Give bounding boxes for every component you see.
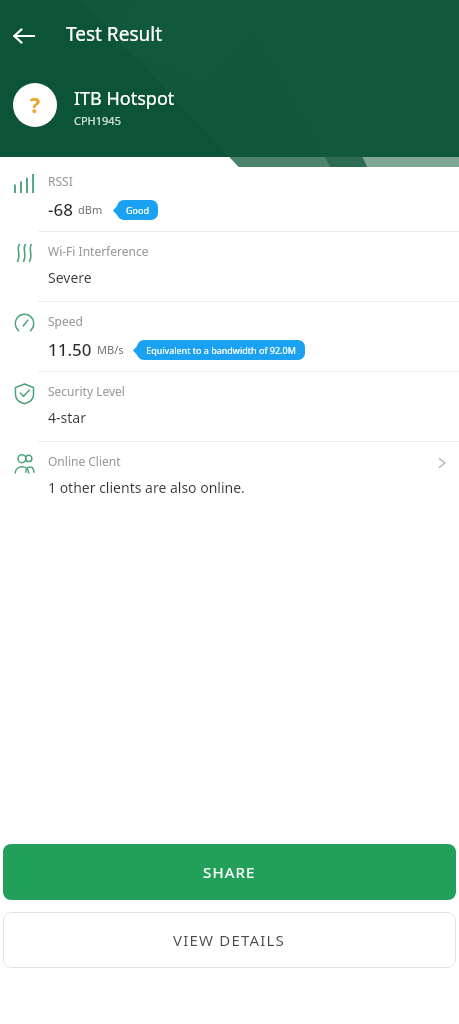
staticText: Test Result [66, 21, 162, 47]
staticText: Speed [48, 313, 83, 329]
staticText: ? [30, 91, 41, 120]
button[interactable]: SHARE [3, 844, 456, 900]
button[interactable]: VIEW DETAILS [3, 912, 456, 968]
staticText: Good [126, 204, 149, 216]
staticText: CPH1945 [74, 113, 121, 128]
staticText: -68 [48, 198, 73, 221]
staticText: Severe [48, 268, 92, 287]
staticText: SHARE [203, 862, 256, 882]
staticText: 1 other clients are also online. [48, 478, 245, 497]
staticText: ITB Hotspot [74, 86, 175, 111]
staticText: 11.50 [48, 338, 92, 361]
button[interactable]: Online Client [0, 442, 459, 511]
staticText: Equivalent to a bandwidth of 92.0M [146, 344, 296, 356]
staticText: Security Level [48, 383, 125, 399]
button[interactable]: Back [0, 12, 48, 60]
staticText: dBm [78, 202, 103, 217]
staticText: 4-star [48, 408, 86, 427]
staticText: Wi-Fi Interference [48, 243, 149, 259]
staticText: VIEW DETAILS [173, 930, 286, 950]
staticText: RSSI [48, 173, 73, 189]
staticText: MB/s [97, 342, 124, 357]
staticText: Online Client [48, 453, 121, 469]
